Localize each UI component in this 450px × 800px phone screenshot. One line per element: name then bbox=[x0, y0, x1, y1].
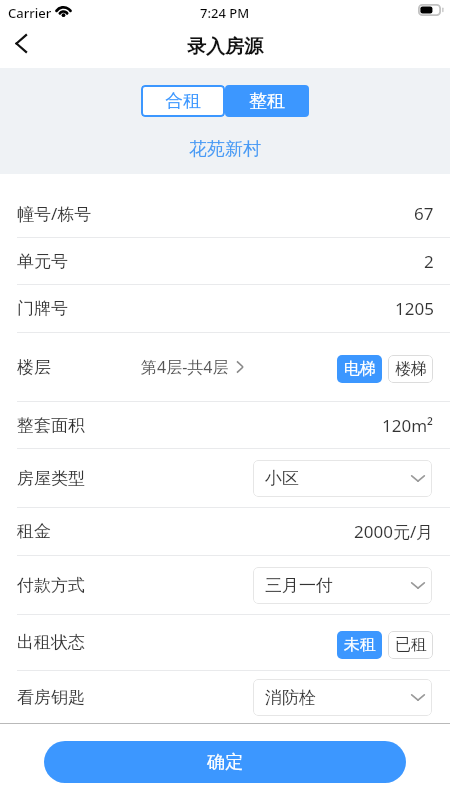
staticText: 确定 bbox=[207, 751, 243, 774]
staticText: 出租状态 bbox=[17, 632, 85, 653]
staticText: 付款方式 bbox=[17, 575, 85, 596]
staticText: 整套面积 bbox=[17, 415, 85, 436]
button[interactable]: 租金 bbox=[0, 508, 450, 555]
staticText: 2000元/月 bbox=[354, 520, 434, 543]
staticText: 看房钥匙 bbox=[17, 687, 85, 708]
staticText: 未租 bbox=[344, 635, 376, 655]
button[interactable]: 已租 bbox=[388, 631, 433, 659]
button[interactable]: 电梯 bbox=[337, 355, 382, 383]
button[interactable]: 合租 bbox=[141, 85, 225, 117]
staticText: 7:24 PM bbox=[200, 4, 250, 22]
staticText: 小区 bbox=[265, 468, 299, 489]
button[interactable]: Back bbox=[0, 26, 42, 68]
staticText: 楼层 bbox=[17, 357, 51, 378]
staticText: 整租 bbox=[249, 90, 285, 113]
button[interactable]: 消防栓 bbox=[253, 679, 432, 716]
staticText: 67 bbox=[414, 202, 434, 225]
staticText: 120m² bbox=[382, 414, 434, 437]
button[interactable]: 幢号/栋号 bbox=[0, 190, 450, 237]
button[interactable]: 门牌号 bbox=[0, 285, 450, 332]
staticText: 第4层-共4层 bbox=[141, 356, 229, 378]
staticText: 2 bbox=[424, 250, 434, 273]
staticText: 录入房源 bbox=[187, 35, 263, 59]
button[interactable]: 三月一付 bbox=[253, 567, 432, 604]
staticText: 花苑新村 bbox=[189, 138, 261, 161]
staticText: 租金 bbox=[17, 521, 51, 542]
staticText: 单元号 bbox=[17, 251, 68, 272]
button[interactable]: 未租 bbox=[337, 631, 382, 659]
button[interactable]: 整租 bbox=[225, 85, 309, 117]
staticText: 合租 bbox=[165, 90, 201, 113]
button[interactable]: 小区 bbox=[253, 460, 432, 497]
staticText: 房屋类型 bbox=[17, 468, 85, 489]
button[interactable]: 确定 bbox=[44, 741, 406, 783]
staticText: 门牌号 bbox=[17, 298, 68, 319]
button[interactable]: 楼梯 bbox=[388, 355, 433, 383]
staticText: 电梯 bbox=[344, 359, 376, 379]
staticText: Carrier bbox=[8, 4, 52, 22]
staticText: 三月一付 bbox=[265, 575, 333, 596]
button[interactable]: 整套面积 bbox=[0, 402, 450, 448]
button[interactable]: 花苑新村 bbox=[179, 135, 271, 164]
staticText: 幢号/栋号 bbox=[17, 202, 92, 225]
staticText: 已租 bbox=[395, 635, 427, 655]
staticText: 消防栓 bbox=[265, 687, 316, 708]
staticText: 1205 bbox=[395, 297, 434, 320]
staticText: 楼梯 bbox=[395, 359, 427, 379]
button[interactable]: 单元号 bbox=[0, 238, 450, 284]
button[interactable]: 楼层 bbox=[0, 333, 450, 401]
